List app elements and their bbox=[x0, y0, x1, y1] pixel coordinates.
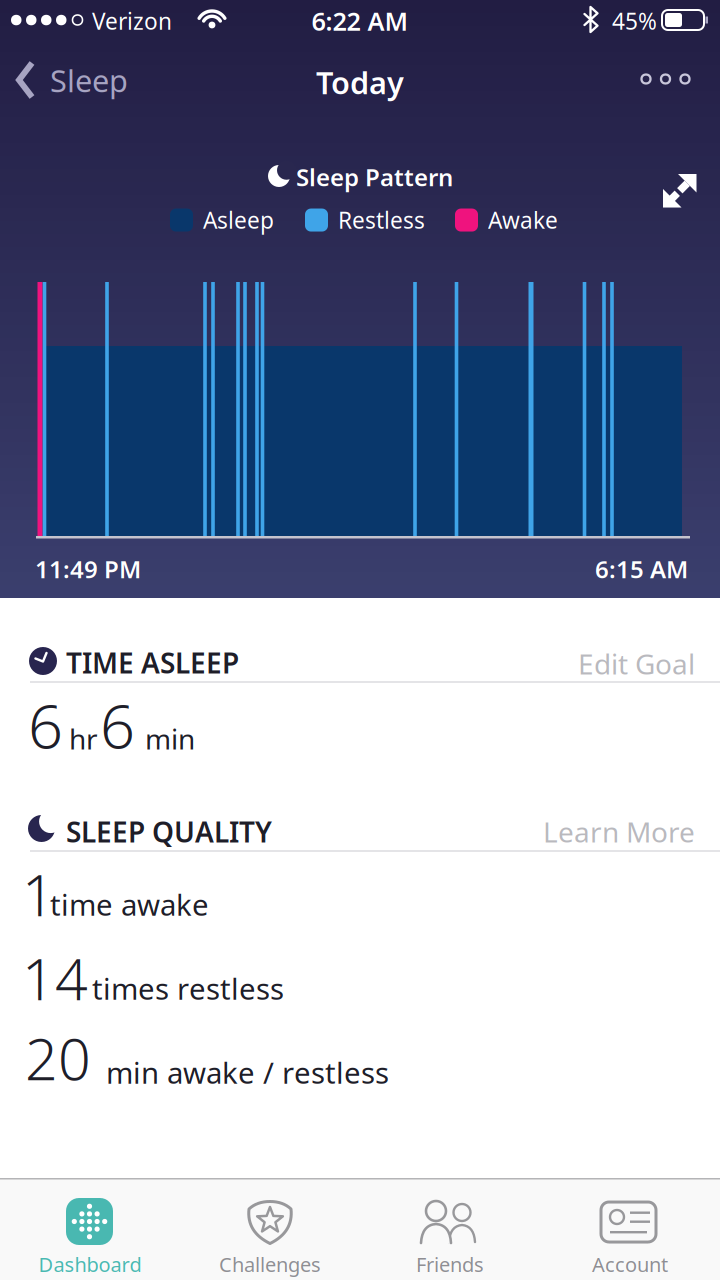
staticText: 20 bbox=[25, 1020, 91, 1096]
staticText: Friends bbox=[416, 1251, 484, 1278]
staticText: 6 bbox=[100, 684, 135, 765]
staticText: Learn More bbox=[543, 813, 695, 850]
staticText: 11:49 PM bbox=[35, 553, 141, 585]
staticText: time awake bbox=[50, 885, 209, 924]
staticText: min awake / restless bbox=[106, 1053, 389, 1092]
staticText: 14 bbox=[22, 940, 88, 1016]
staticText: Sleep Pattern bbox=[296, 161, 453, 193]
staticText: Awake bbox=[488, 205, 558, 235]
staticText: Challenges bbox=[219, 1251, 321, 1278]
staticText: hr bbox=[69, 720, 98, 757]
staticText: Restless bbox=[338, 205, 425, 235]
staticText: Verizon bbox=[92, 6, 172, 36]
staticText: Today bbox=[316, 62, 404, 103]
staticText: SLEEP QUALITY bbox=[66, 813, 272, 850]
staticText: 6 bbox=[28, 684, 63, 765]
staticText: times restless bbox=[92, 969, 284, 1008]
staticText: Dashboard bbox=[38, 1251, 141, 1278]
staticText: 6:15 AM bbox=[595, 553, 688, 585]
staticText: TIME ASLEEP bbox=[66, 644, 239, 681]
staticText: min bbox=[145, 720, 195, 757]
staticText: Account bbox=[592, 1251, 668, 1278]
staticText: 1 bbox=[22, 856, 55, 932]
staticText: 6:22 AM bbox=[311, 4, 408, 38]
staticText: Asleep bbox=[203, 205, 274, 235]
staticText: Sleep bbox=[50, 60, 128, 101]
staticText: Edit Goal bbox=[578, 645, 695, 682]
staticText: 45% bbox=[612, 6, 657, 36]
